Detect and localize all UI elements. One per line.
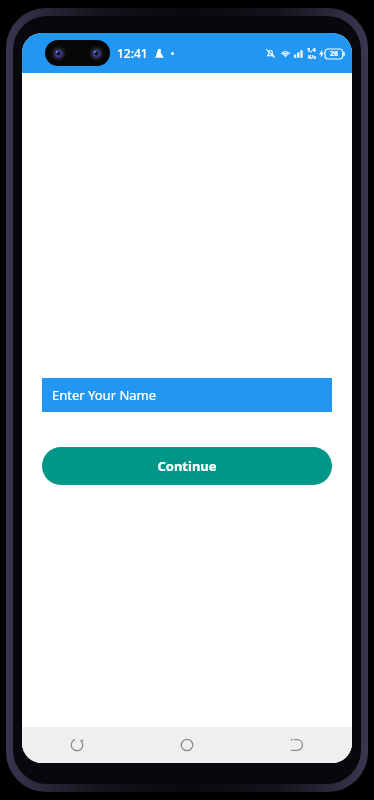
staticText: Enter Your Name <box>52 386 157 404</box>
button[interactable]: Enter Your Name <box>42 378 332 412</box>
button[interactable]: Recent apps <box>22 727 132 763</box>
staticText: 1,4 <box>307 46 316 54</box>
staticText: 26 <box>330 49 339 59</box>
staticText: Continue <box>157 457 217 475</box>
button[interactable]: Home <box>132 727 242 763</box>
staticText: K/s <box>308 54 316 61</box>
staticText: 12:41 <box>117 45 148 61</box>
button[interactable]: Continue <box>42 447 332 485</box>
button[interactable]: Back <box>242 727 352 763</box>
